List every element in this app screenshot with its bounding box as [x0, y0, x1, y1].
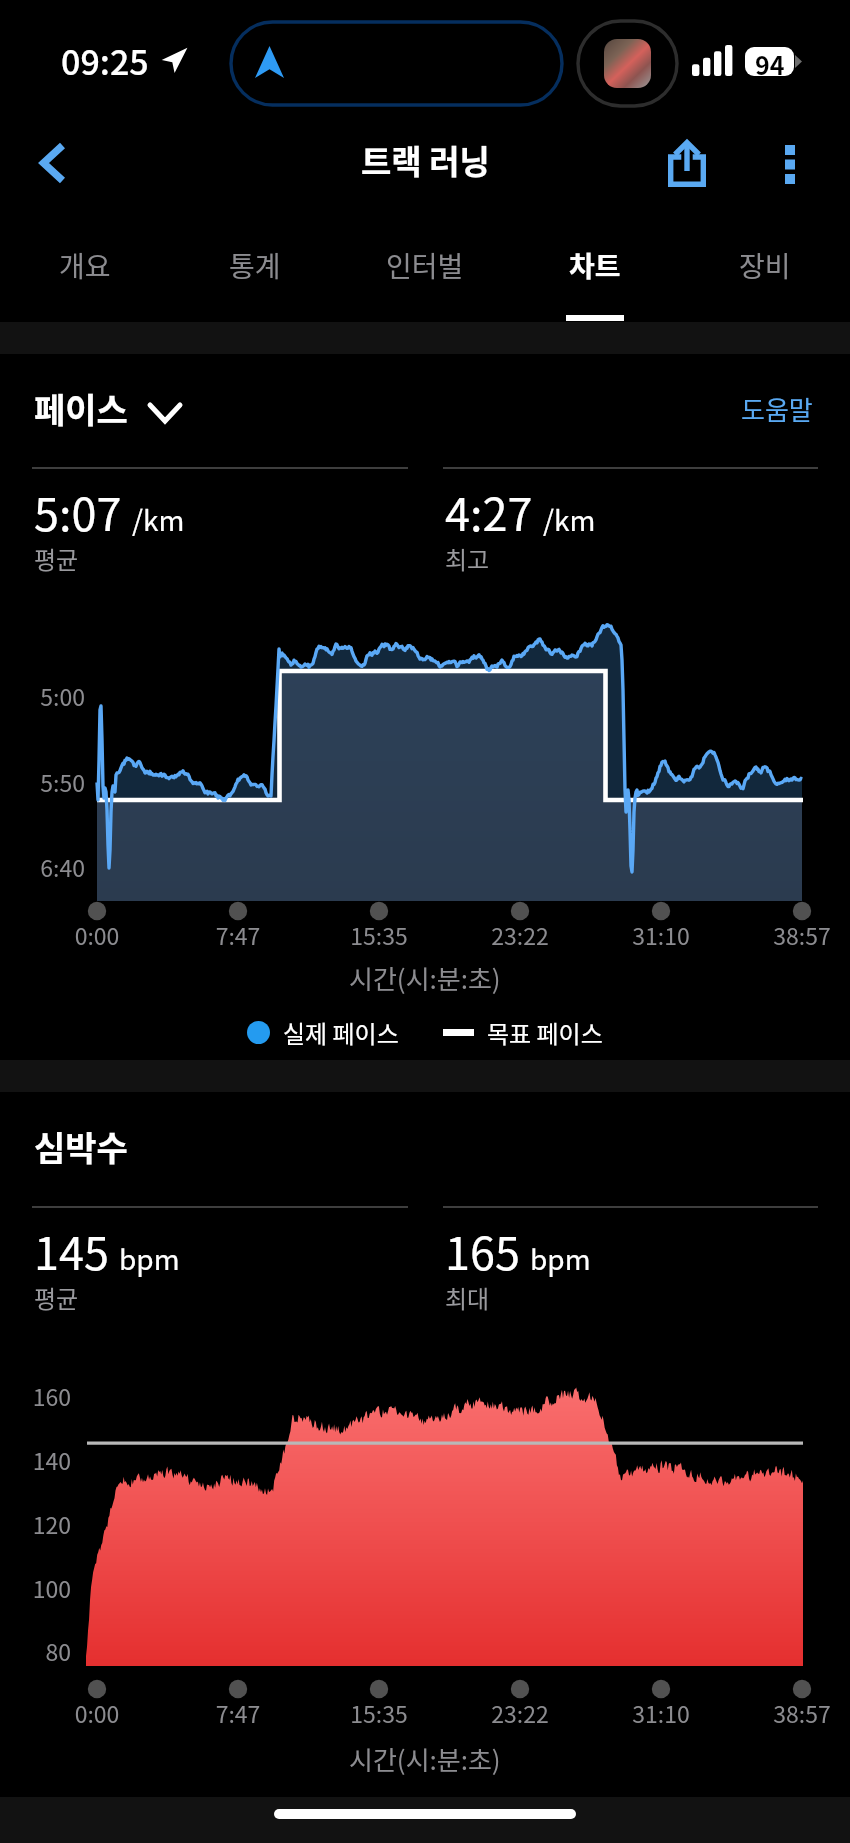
staticText: 38:57 [747, 1696, 850, 1729]
staticText: 5:50 [0, 765, 85, 798]
staticText: 23:22 [465, 1696, 575, 1729]
staticText: 시간(시:분:초) [349, 1740, 501, 1778]
staticText: 통계 [229, 245, 281, 286]
staticText: 120 [0, 1507, 71, 1540]
staticText: bpm [530, 1238, 591, 1279]
staticText: 94 [755, 47, 785, 75]
staticText: 트랙 러닝 [361, 136, 490, 184]
staticText: 인터벌 [386, 245, 464, 286]
button[interactable]: 인터벌 [340, 216, 510, 322]
staticText: 7:47 [183, 918, 293, 951]
staticText: 목표 페이스 [487, 1015, 603, 1050]
staticText: 0:00 [42, 1696, 152, 1729]
button[interactable]: Back [14, 124, 92, 202]
staticText: 5:00 [0, 679, 85, 712]
staticText: 145 [34, 1218, 109, 1283]
staticText: 31:10 [606, 1696, 716, 1729]
button[interactable]: More options [751, 125, 829, 203]
staticText: /km [543, 499, 596, 540]
staticText: 도움말 [741, 390, 813, 428]
staticText: 장비 [739, 245, 791, 286]
button[interactable]: 통계 [170, 216, 340, 322]
button[interactable]: 페이스 [34, 384, 180, 433]
staticText: 4:27 [445, 479, 533, 544]
staticText: 160 [0, 1379, 71, 1412]
staticText: 15:35 [324, 918, 434, 951]
staticText: 심박수 [34, 1122, 128, 1171]
staticText: 140 [0, 1443, 71, 1476]
staticText: 평균 [34, 1280, 79, 1315]
staticText: 최고 [445, 541, 490, 576]
staticText: 5:07 [34, 479, 122, 544]
staticText: 23:22 [465, 918, 575, 951]
staticText: 실제 페이스 [283, 1015, 399, 1050]
staticText: 시간(시:분:초) [349, 959, 501, 997]
staticText: 차트 [569, 245, 621, 286]
button[interactable]: Share [648, 125, 726, 203]
staticText: 80 [0, 1634, 71, 1667]
staticText: 7:47 [183, 1696, 293, 1729]
staticText: 페이스 [34, 384, 128, 433]
staticText: bpm [119, 1238, 180, 1279]
staticText: 최대 [445, 1280, 490, 1315]
button[interactable]: 도움말 [741, 390, 813, 428]
staticText: 평균 [34, 541, 79, 576]
button[interactable]: 차트 [510, 216, 680, 322]
staticText: 09:25 [61, 36, 149, 85]
staticText: 6:40 [0, 850, 85, 883]
staticText: 0:00 [42, 918, 152, 951]
staticText: 개요 [59, 245, 111, 286]
button[interactable]: 장비 [680, 216, 850, 322]
staticText: /km [132, 499, 185, 540]
button[interactable]: 개요 [0, 216, 170, 322]
staticText: 38:57 [747, 918, 850, 951]
staticText: 165 [445, 1218, 520, 1283]
staticText: 100 [0, 1571, 71, 1604]
staticText: 15:35 [324, 1696, 434, 1729]
staticText: 31:10 [606, 918, 716, 951]
